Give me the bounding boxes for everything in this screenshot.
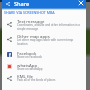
staticText: Facebook bbox=[17, 50, 37, 56]
button[interactable]: Share bbox=[5, 1, 10, 6]
staticText: Share on Facebook bbox=[17, 55, 42, 59]
button[interactable]: Close bbox=[78, 0, 84, 6]
button[interactable]: whatsApp bbox=[2, 60, 86, 72]
staticText: KML file bbox=[17, 73, 34, 79]
staticText: whatsApp bbox=[17, 62, 38, 68]
staticText: Coordinates, altitude and other informat… bbox=[17, 23, 83, 30]
staticText: Other map apps bbox=[17, 33, 50, 39]
staticText: Let other map apps work with current map… bbox=[17, 38, 83, 45]
button[interactable]: Other map apps bbox=[2, 33, 86, 48]
staticText: Share on whatsApp bbox=[17, 67, 43, 71]
staticText: Share bbox=[14, 0, 30, 6]
button[interactable]: Text message bbox=[2, 18, 86, 33]
staticText: f bbox=[9, 52, 11, 57]
staticText: Pack all of the kinds of places bbox=[17, 78, 56, 82]
button[interactable]: KML file bbox=[2, 72, 86, 86]
staticText: SHARE VIA SCREENSHOT MBA bbox=[4, 10, 55, 15]
staticText: Text message bbox=[17, 18, 45, 24]
button[interactable]: f bbox=[2, 48, 86, 60]
